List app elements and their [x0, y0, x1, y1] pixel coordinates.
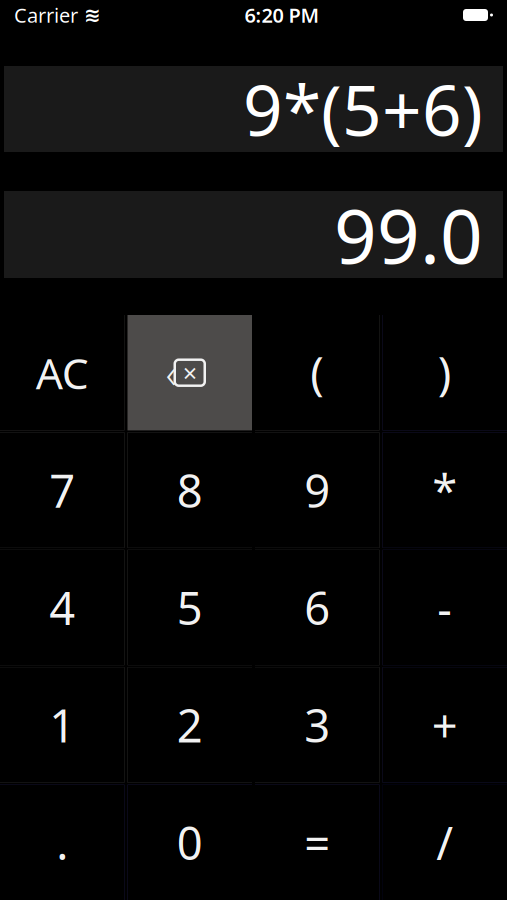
staticText: Carrier	[14, 2, 78, 28]
staticText: 2	[177, 695, 203, 755]
button[interactable]: 5	[127, 550, 252, 665]
button[interactable]: )	[382, 315, 507, 430]
staticText: /	[436, 812, 453, 872]
button[interactable]: /	[382, 785, 507, 900]
button[interactable]: 3	[255, 667, 379, 783]
staticText: 5	[177, 577, 203, 638]
staticText: AC	[36, 344, 89, 401]
staticText: +	[432, 695, 458, 755]
staticText: 9	[304, 460, 330, 520]
button[interactable]: 2	[127, 667, 252, 783]
button[interactable]: =	[255, 785, 379, 900]
staticText: 1	[49, 695, 75, 755]
staticText: =	[304, 812, 330, 872]
button[interactable]: 1	[0, 667, 124, 783]
staticText: ‹	[166, 346, 177, 399]
staticText: )	[438, 343, 452, 403]
staticText: 6:20 PM	[244, 2, 319, 28]
staticText: 9*(5+6)	[243, 63, 483, 155]
button[interactable]: 6	[255, 550, 379, 665]
button[interactable]: 7	[0, 432, 124, 548]
button[interactable]: 0	[127, 785, 252, 900]
button[interactable]: (	[255, 315, 379, 430]
button[interactable]: Delete	[127, 315, 252, 430]
button[interactable]: 4	[0, 550, 124, 665]
button[interactable]: -	[382, 550, 507, 665]
staticText: 8	[177, 460, 203, 520]
button[interactable]: 9	[255, 432, 379, 548]
button[interactable]: +	[382, 667, 507, 783]
staticText: ×	[183, 356, 197, 389]
button[interactable]: *	[382, 432, 507, 548]
staticText: 7	[49, 460, 75, 520]
staticText: (	[310, 343, 324, 403]
staticText: .	[56, 812, 68, 872]
staticText: 3	[304, 695, 330, 755]
staticText: 0	[177, 812, 203, 872]
button[interactable]: AC	[0, 315, 124, 430]
staticText: ≋	[84, 4, 101, 26]
staticText: 99.0	[334, 185, 483, 284]
button[interactable]: 8	[127, 432, 252, 548]
button[interactable]: .	[0, 785, 124, 900]
staticText: -	[437, 577, 452, 638]
staticText: 6	[304, 577, 330, 638]
staticText: *	[432, 460, 457, 520]
staticText: 4	[49, 577, 75, 638]
